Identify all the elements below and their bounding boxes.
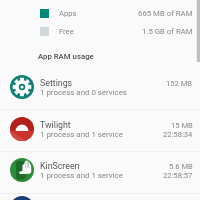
staticText: Settings <box>40 78 73 88</box>
staticText: 1 process and 1 service <box>40 130 123 139</box>
staticText: 665 MB of RAM <box>138 9 193 18</box>
button[interactable]: Settings <box>0 68 200 110</box>
staticText: 22:58:34 <box>163 130 193 139</box>
staticText: App RAM usage <box>38 52 94 61</box>
button[interactable]: App RAM usage <box>38 52 94 61</box>
staticText: 15 MB <box>171 121 193 130</box>
staticText: Apps <box>59 9 77 18</box>
staticText: 1.5 GB of RAM <box>142 27 193 36</box>
staticText: KinScreen <box>40 161 80 171</box>
staticText: 1 process and 0 services <box>40 88 127 97</box>
button[interactable]: KinScreen <box>0 151 200 193</box>
button[interactable]: Free <box>0 26 200 37</box>
staticText: 22:58:57 <box>163 171 193 180</box>
button[interactable]: Twilight <box>0 110 200 152</box>
staticText: Twilight <box>40 120 71 130</box>
staticText: 1 process and 1 service <box>40 171 123 180</box>
staticText: Free <box>59 27 74 36</box>
button[interactable]: Apps <box>0 8 200 19</box>
button[interactable]: Drive <box>0 193 200 200</box>
staticText: 5.6 MB <box>169 162 193 171</box>
staticText: 152 MB <box>166 79 193 88</box>
